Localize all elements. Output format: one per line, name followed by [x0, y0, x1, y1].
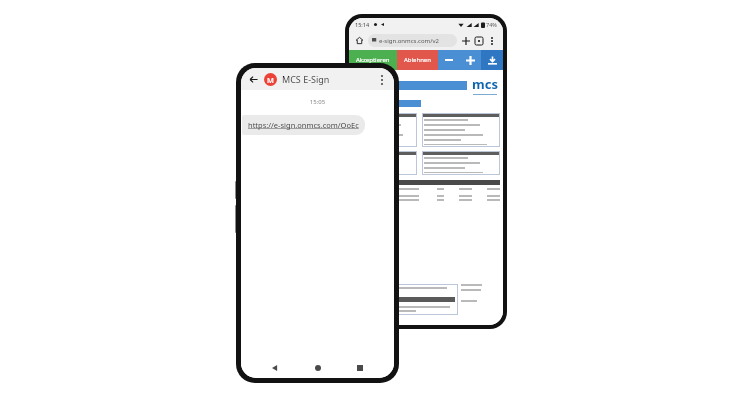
button[interactable]: Back	[267, 360, 283, 376]
button[interactable]: Recent apps	[352, 360, 368, 376]
staticText: Akzeptieren	[356, 56, 390, 64]
staticText: e-sign.onmcs.com/v2	[379, 37, 439, 45]
button[interactable]: New tab	[460, 35, 472, 47]
button[interactable]: Ablehnen	[397, 50, 438, 70]
button[interactable]: Tabs	[473, 35, 485, 47]
button[interactable]: More options	[375, 73, 388, 86]
button[interactable]: e-sign.onmcs.com/v2	[368, 34, 457, 47]
staticText: 15:14	[355, 21, 370, 28]
staticText: https://e-sign.onmcs.com/OoEc	[248, 120, 359, 130]
button[interactable]: Akzeptieren	[349, 50, 397, 70]
staticText: 15:05	[241, 98, 394, 106]
button[interactable]: https://e-sign.onmcs.com/OoEc	[242, 115, 365, 135]
staticText: MCS E-Sign	[282, 73, 330, 85]
staticText: 74%	[486, 21, 497, 28]
staticText: Ablehnen	[404, 56, 431, 64]
button[interactable]: Home	[310, 360, 326, 376]
button[interactable]: Zoom out	[438, 50, 459, 70]
button[interactable]: More options	[486, 35, 498, 47]
button[interactable]: Home	[354, 35, 365, 46]
button[interactable]: Back	[247, 73, 260, 86]
button[interactable]: Download	[481, 50, 503, 70]
staticText: M	[267, 75, 274, 85]
button[interactable]: Zoom in	[459, 50, 481, 70]
staticText: mcs	[472, 75, 498, 93]
